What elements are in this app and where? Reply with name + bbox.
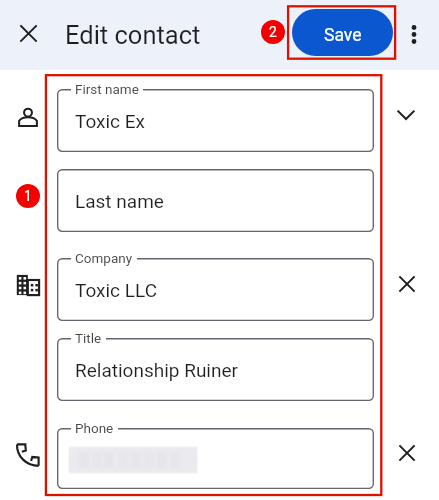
staticText: Title bbox=[75, 330, 102, 346]
staticText: Relationship Ruiner bbox=[75, 359, 238, 381]
button[interactable]: Phone bbox=[57, 428, 374, 489]
button[interactable]: Company bbox=[57, 258, 374, 321]
button[interactable]: More options bbox=[396, 16, 432, 52]
button[interactable]: Clear company bbox=[387, 264, 427, 304]
staticText: Company bbox=[75, 250, 133, 266]
button[interactable]: Clear phone bbox=[387, 433, 427, 473]
button[interactable]: Contact name bbox=[8, 98, 48, 138]
staticText: Toxic LLC bbox=[75, 279, 157, 301]
button[interactable]: Expand name fields bbox=[386, 95, 426, 135]
staticText: Save bbox=[324, 25, 362, 46]
button[interactable]: Save bbox=[292, 9, 393, 56]
button[interactable]: Last name bbox=[57, 169, 374, 232]
button[interactable]: First name bbox=[57, 89, 374, 152]
button[interactable]: Phone bbox=[8, 435, 48, 475]
staticText: Toxic Ex bbox=[75, 110, 145, 132]
button[interactable]: Title bbox=[57, 338, 374, 401]
staticText: 2 bbox=[269, 24, 277, 40]
staticText: Last name bbox=[75, 190, 164, 212]
button[interactable]: Close bbox=[10, 15, 46, 51]
staticText: Phone bbox=[75, 420, 114, 436]
staticText: First name bbox=[75, 81, 139, 97]
button[interactable]: Company bbox=[8, 265, 48, 305]
staticText: Edit contact bbox=[65, 20, 201, 50]
staticText: 1 bbox=[24, 188, 32, 204]
